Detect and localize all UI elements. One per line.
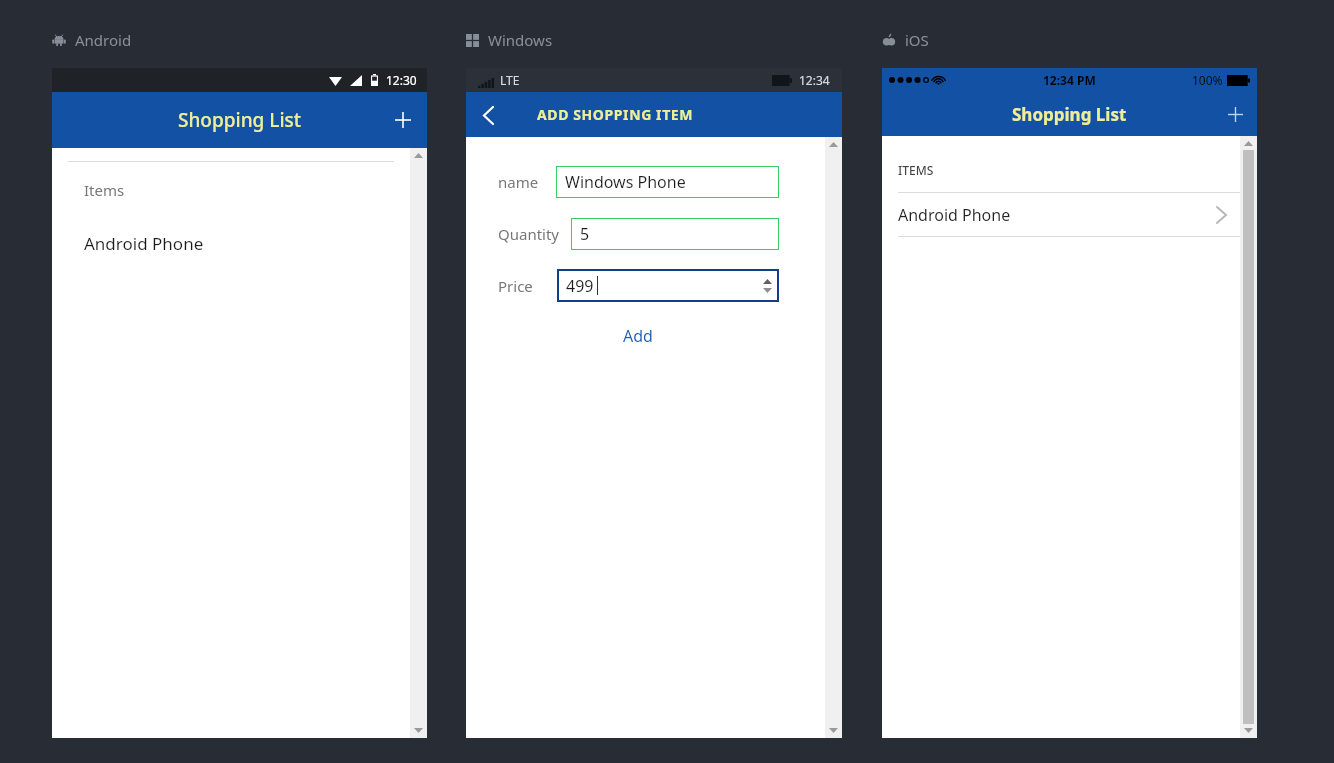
staticText: Shopping List xyxy=(1012,103,1127,126)
staticText: Android xyxy=(75,30,132,50)
staticText: Add xyxy=(623,325,653,347)
staticText: Windows Phone xyxy=(565,171,686,193)
staticText: 5 xyxy=(580,223,590,245)
staticText: 499 xyxy=(566,275,594,297)
button[interactable]: Add item xyxy=(1213,92,1257,136)
staticText: Items xyxy=(84,180,125,200)
staticText: Shopping List xyxy=(178,107,302,133)
staticText: Windows xyxy=(488,30,553,50)
staticText: name xyxy=(498,172,539,192)
button[interactable]: Android Phone xyxy=(52,230,410,269)
button[interactable]: Android Phone xyxy=(882,193,1240,236)
button[interactable]: Add item xyxy=(379,96,427,144)
staticText: 12:34 PM xyxy=(1043,72,1096,88)
button[interactable]: Price xyxy=(498,269,779,302)
staticText: Android Phone xyxy=(84,232,204,255)
staticText: Price xyxy=(498,276,533,296)
staticText: Android Phone xyxy=(898,204,1217,226)
staticText: 12:30 xyxy=(386,72,417,88)
staticText: Quantity xyxy=(498,224,560,244)
staticText: ADD SHOPPING ITEM xyxy=(537,105,694,124)
button[interactable]: Back xyxy=(466,93,510,137)
staticText: iOS xyxy=(905,30,929,50)
button[interactable]: Add xyxy=(613,322,663,350)
staticText: ITEMS xyxy=(898,162,934,178)
button[interactable]: name xyxy=(498,166,779,198)
staticText: 12:34 xyxy=(799,72,830,88)
button[interactable]: Quantity xyxy=(498,218,779,250)
staticText: LTE xyxy=(500,72,520,88)
staticText: 100% xyxy=(1192,72,1223,88)
